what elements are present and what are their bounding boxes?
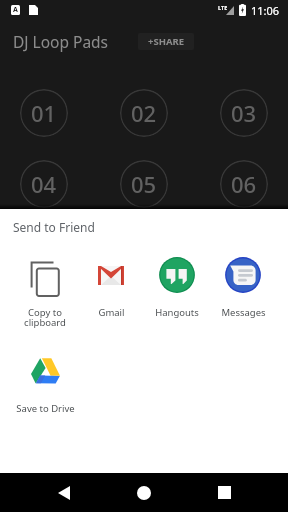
button[interactable]: Home [120,473,168,512]
button[interactable]: Gmail [78,256,144,319]
staticText: Send to Friend [13,219,95,235]
button[interactable]: Hangouts [144,256,210,319]
staticText: DJ Loop Pads [13,31,109,52]
staticText: +SHARE [148,35,185,48]
staticText: LTE [218,4,228,11]
staticText: 04 [31,169,57,199]
button[interactable]: Recent apps [200,473,248,512]
button[interactable]: 01 [20,89,68,137]
staticText: Save to Drive [16,402,75,415]
button[interactable]: Back [39,473,88,512]
button[interactable]: 06 [220,160,268,208]
staticText: Hangouts [155,306,199,319]
button[interactable]: Copy to clipboard [12,256,78,329]
staticText: 02 [131,98,157,128]
staticText: Gmail [98,306,125,319]
staticText: Copy to clipboard [24,306,66,329]
button[interactable]: 02 [120,89,168,137]
button[interactable]: 04 [20,160,68,208]
button[interactable]: Save to Drive [12,352,78,415]
staticText: A [13,5,18,15]
button[interactable]: Messages [210,256,276,319]
button[interactable]: 03 [220,89,268,137]
staticText: 11:06 [251,3,280,18]
button[interactable]: +SHARE [138,33,194,50]
staticText: 05 [131,169,157,199]
staticText: 01 [31,98,57,128]
button[interactable]: 05 [120,160,168,208]
staticText: Messages [221,306,266,319]
staticText: 06 [231,169,257,199]
staticText: 03 [231,98,257,128]
